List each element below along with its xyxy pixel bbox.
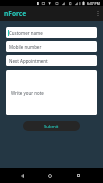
button[interactable]: Mobile number (6, 41, 97, 52)
staticText: 6:37 PM (87, 1, 100, 6)
button[interactable]: Recents (69, 168, 87, 183)
staticText: Mobile number (9, 44, 42, 50)
button[interactable]: Back (13, 168, 31, 183)
staticText: Write your note (11, 90, 44, 96)
button[interactable]: Next Appointment (6, 55, 97, 66)
staticText: Customer name (9, 30, 43, 36)
button[interactable]: More options (92, 6, 103, 21)
button[interactable]: Write your note (6, 70, 97, 115)
staticText: Next Appointment (9, 58, 48, 64)
button[interactable]: Submit (23, 121, 80, 131)
staticText: nForce (4, 9, 27, 18)
staticText: Submit (44, 123, 59, 129)
button[interactable]: Customer name (6, 27, 97, 38)
button[interactable]: Home (41, 168, 59, 183)
